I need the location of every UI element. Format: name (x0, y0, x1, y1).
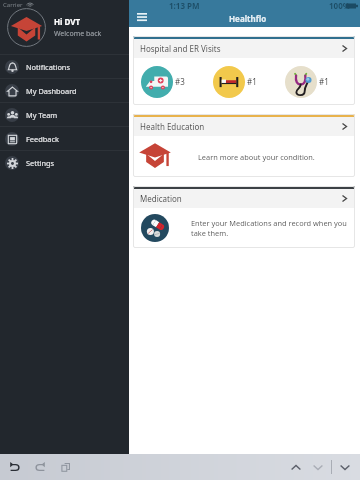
staticText: 1:13 PM (169, 0, 200, 11)
staticText: Feedback (26, 134, 59, 144)
staticText: Welcome back (54, 29, 102, 39)
staticText: Notifications (26, 62, 70, 72)
button[interactable]: Hide keyboard (335, 457, 355, 477)
button[interactable]: Next field (308, 457, 328, 477)
staticText: #1 (319, 76, 329, 87)
staticText: Learn more about your condition. (198, 152, 315, 162)
button[interactable]: Open navigation menu (133, 10, 151, 24)
button[interactable]: Previous field (286, 457, 306, 477)
staticText: My Team (26, 110, 58, 120)
button[interactable]: Notifications (0, 55, 129, 78)
staticText: Healthflo (229, 13, 267, 24)
button[interactable]: Settings (0, 151, 129, 174)
button[interactable]: Feedback (0, 127, 129, 150)
button[interactable]: My Dashboard (0, 79, 129, 102)
button[interactable]: My Team (0, 103, 129, 126)
button[interactable]: Medication (133, 189, 355, 208)
staticText: Enter your Medications and record when y… (191, 218, 348, 238)
button[interactable]: #1 (285, 58, 329, 105)
button[interactable]: Redo (30, 457, 50, 477)
button[interactable]: Health Education (133, 117, 355, 136)
staticText: My Dashboard (26, 86, 77, 96)
staticText: Carrier (3, 1, 23, 9)
button[interactable]: #3 (141, 58, 185, 105)
button[interactable]: Paste (55, 457, 75, 477)
button[interactable]: #1 (213, 58, 257, 105)
staticText: #1 (247, 76, 257, 87)
button[interactable]: Hi DVT (0, 0, 129, 54)
staticText: Hi DVT (54, 16, 81, 27)
button[interactable]: Undo (5, 457, 25, 477)
staticText: Medication (140, 193, 182, 204)
staticText: #3 (175, 76, 185, 87)
button[interactable]: Hospital and ER Visits (133, 39, 355, 58)
staticText: Settings (26, 158, 55, 168)
staticText: Health Education (140, 121, 205, 132)
staticText: 100% (329, 0, 350, 11)
staticText: Hospital and ER Visits (140, 43, 221, 54)
